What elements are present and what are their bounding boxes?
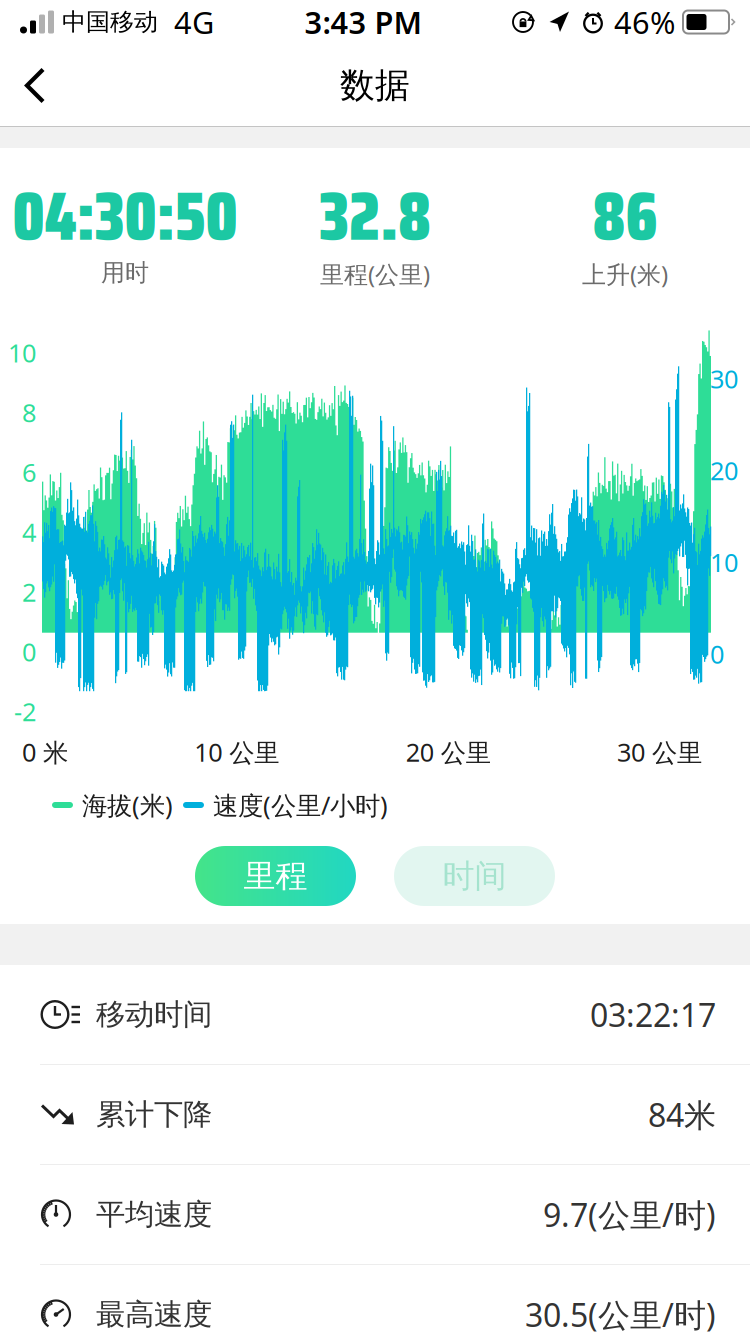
staticText: 上升(米) <box>582 258 668 290</box>
staticText: 平均速度 <box>96 1196 212 1232</box>
staticText: 8 <box>22 396 36 429</box>
staticText: 0 米 <box>22 735 68 769</box>
button[interactable]: Back <box>23 63 67 107</box>
button[interactable]: 时间 <box>394 846 555 906</box>
staticText: 20 公里 <box>406 735 491 769</box>
button[interactable]: 里程 <box>195 846 356 906</box>
button[interactable]: 平均速度 <box>0 1165 750 1265</box>
staticText: 03:22:17 <box>590 993 716 1036</box>
staticText: 30 <box>710 362 738 395</box>
staticText: 6 <box>22 455 36 489</box>
staticText: 32.8 <box>319 164 431 269</box>
staticText: 速度(公里/小时) <box>213 788 388 822</box>
staticText: 海拔(米) <box>82 788 173 822</box>
staticText: 10 <box>8 336 36 369</box>
staticText: 84米 <box>648 1093 716 1136</box>
staticText: 46% <box>614 2 675 42</box>
staticText: 20 <box>710 453 738 487</box>
staticText: 0 <box>22 635 36 668</box>
staticText: 2 <box>22 575 36 609</box>
staticText: 04:30:50 <box>12 164 237 269</box>
staticText: 最高速度 <box>96 1296 212 1332</box>
staticText: 数据 <box>340 64 410 107</box>
button[interactable]: 累计下降 <box>0 1065 750 1165</box>
staticText: 移动时间 <box>96 996 212 1032</box>
staticText: 中国移动 <box>62 7 158 37</box>
staticText: 时间 <box>442 856 506 896</box>
staticText: 9.7(公里/时) <box>543 1193 716 1236</box>
staticText: -2 <box>14 695 36 728</box>
staticText: 86 <box>592 164 657 269</box>
staticText: 里程(公里) <box>320 258 430 290</box>
staticText: 10 <box>710 545 738 579</box>
staticText: 10 公里 <box>194 735 279 769</box>
button[interactable]: 移动时间 <box>0 965 750 1065</box>
button[interactable]: 最高速度 <box>0 1265 750 1334</box>
staticText: 4G <box>174 2 214 42</box>
staticText: 30 公里 <box>617 735 702 769</box>
staticText: 用时 <box>101 258 149 287</box>
staticText: 30.5(公里/时) <box>525 1293 716 1334</box>
staticText: 0 <box>710 637 724 671</box>
staticText: 4 <box>22 515 36 549</box>
staticText: 3:43 PM <box>304 2 421 42</box>
staticText: 累计下降 <box>96 1096 212 1132</box>
staticText: 里程 <box>243 856 307 896</box>
